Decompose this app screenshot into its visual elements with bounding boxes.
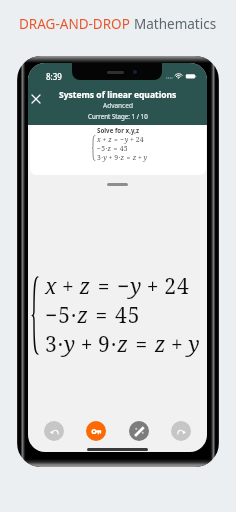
- staticText: 3·y + 9·z = z + y: [45, 330, 201, 359]
- button[interactable]: Auto solve: [129, 421, 149, 441]
- button[interactable]: Redo: [171, 421, 191, 441]
- staticText: Systems of linear equations: [59, 89, 177, 101]
- staticText: Mathematics: [134, 15, 217, 33]
- button[interactable]: Close: [28, 91, 44, 107]
- staticText: −5·z = 45: [45, 301, 141, 330]
- staticText: 3·y + 9·z = z + y: [97, 153, 148, 162]
- staticText: −5·z = 45: [97, 144, 128, 153]
- staticText: 8:39: [46, 71, 62, 82]
- staticText: x + z = −y + 24: [97, 135, 145, 144]
- staticText: x + z = −y + 24: [45, 272, 190, 301]
- staticText: Current Stage: 1 / 10: [88, 112, 148, 120]
- staticText: Advanced: [103, 101, 133, 110]
- button[interactable]: Unlock hint: [86, 421, 106, 441]
- staticText: Solve for x,y,z: [97, 126, 140, 134]
- staticText: DRAG-AND-DROP: [19, 15, 134, 33]
- button[interactable]: Undo: [44, 421, 64, 441]
